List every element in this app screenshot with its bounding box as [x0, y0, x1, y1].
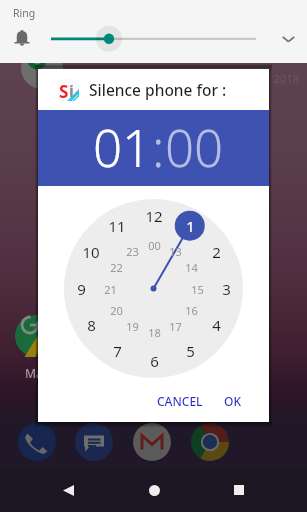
- button[interactable]: 17: [159, 315, 191, 337]
- staticText: 20: [110, 303, 123, 318]
- button[interactable]: Home: [137, 473, 171, 507]
- staticText: 00: [148, 238, 161, 253]
- button[interactable]: 4: [200, 314, 232, 336]
- staticText: 16: [185, 303, 198, 318]
- button[interactable]: 21: [94, 278, 126, 300]
- staticText: CANCEL: [157, 393, 203, 409]
- button[interactable]: 13: [159, 240, 191, 262]
- button[interactable]: 8: [75, 314, 107, 336]
- button[interactable]: 15: [181, 278, 213, 300]
- staticText: S: [59, 80, 69, 101]
- button[interactable]: 3: [210, 278, 242, 300]
- staticText: 7: [113, 341, 122, 361]
- staticText: Ring: [13, 6, 36, 20]
- button[interactable]: Recent apps: [222, 473, 256, 507]
- button[interactable]: 6: [138, 350, 170, 372]
- button[interactable]: 00: [165, 112, 224, 181]
- staticText: 13: [169, 244, 182, 259]
- button[interactable]: 14: [175, 256, 207, 278]
- staticText: 6: [150, 351, 159, 371]
- button[interactable]: 22: [100, 256, 132, 278]
- staticText: 2: [212, 242, 221, 262]
- button[interactable]: 16: [175, 299, 207, 321]
- staticText: 14: [185, 260, 198, 275]
- button[interactable]: 11: [101, 215, 133, 237]
- button[interactable]: 20: [100, 299, 132, 321]
- button[interactable]: Back: [51, 473, 85, 507]
- staticText: 17: [169, 319, 182, 334]
- button[interactable]: OK: [216, 385, 249, 417]
- button[interactable]: 19: [116, 315, 148, 337]
- staticText: i: [69, 80, 74, 101]
- button[interactable]: 1: [174, 215, 206, 237]
- button[interactable]: 18: [138, 321, 170, 343]
- staticText: 12: [145, 206, 163, 226]
- button[interactable]: CANCEL: [149, 385, 211, 417]
- button[interactable]: 10: [75, 241, 107, 263]
- staticText: 3: [222, 279, 231, 299]
- staticText: 11: [108, 216, 126, 236]
- button[interactable]: 7: [101, 340, 133, 362]
- staticText: 4: [212, 315, 221, 335]
- staticText: 9: [77, 279, 86, 299]
- button[interactable]: 23: [116, 240, 148, 262]
- staticText: 18: [148, 325, 161, 340]
- staticText: 21: [104, 282, 117, 297]
- button[interactable]: Expand volume controls: [274, 24, 302, 52]
- staticText: 23: [126, 244, 139, 259]
- staticText: 1: [186, 216, 195, 236]
- staticText: 22: [110, 260, 123, 275]
- staticText: Silence phone for :: [89, 79, 227, 100]
- staticText: , 2018: [268, 71, 299, 86]
- button[interactable]: 12: [138, 205, 170, 227]
- button[interactable]: 01: [93, 112, 152, 181]
- staticText: 19: [126, 319, 139, 334]
- staticText: OK: [224, 393, 241, 409]
- staticText: 10: [82, 242, 100, 262]
- button[interactable]: 9: [65, 278, 97, 300]
- staticText: 5: [186, 341, 195, 361]
- button[interactable]: 00: [138, 234, 170, 256]
- button[interactable]: 2: [200, 241, 232, 263]
- staticText: 15: [191, 282, 204, 297]
- staticText: Ma: [25, 365, 43, 381]
- staticText: 8: [87, 315, 96, 335]
- button[interactable]: 5: [174, 340, 206, 362]
- staticText: :: [152, 112, 165, 181]
